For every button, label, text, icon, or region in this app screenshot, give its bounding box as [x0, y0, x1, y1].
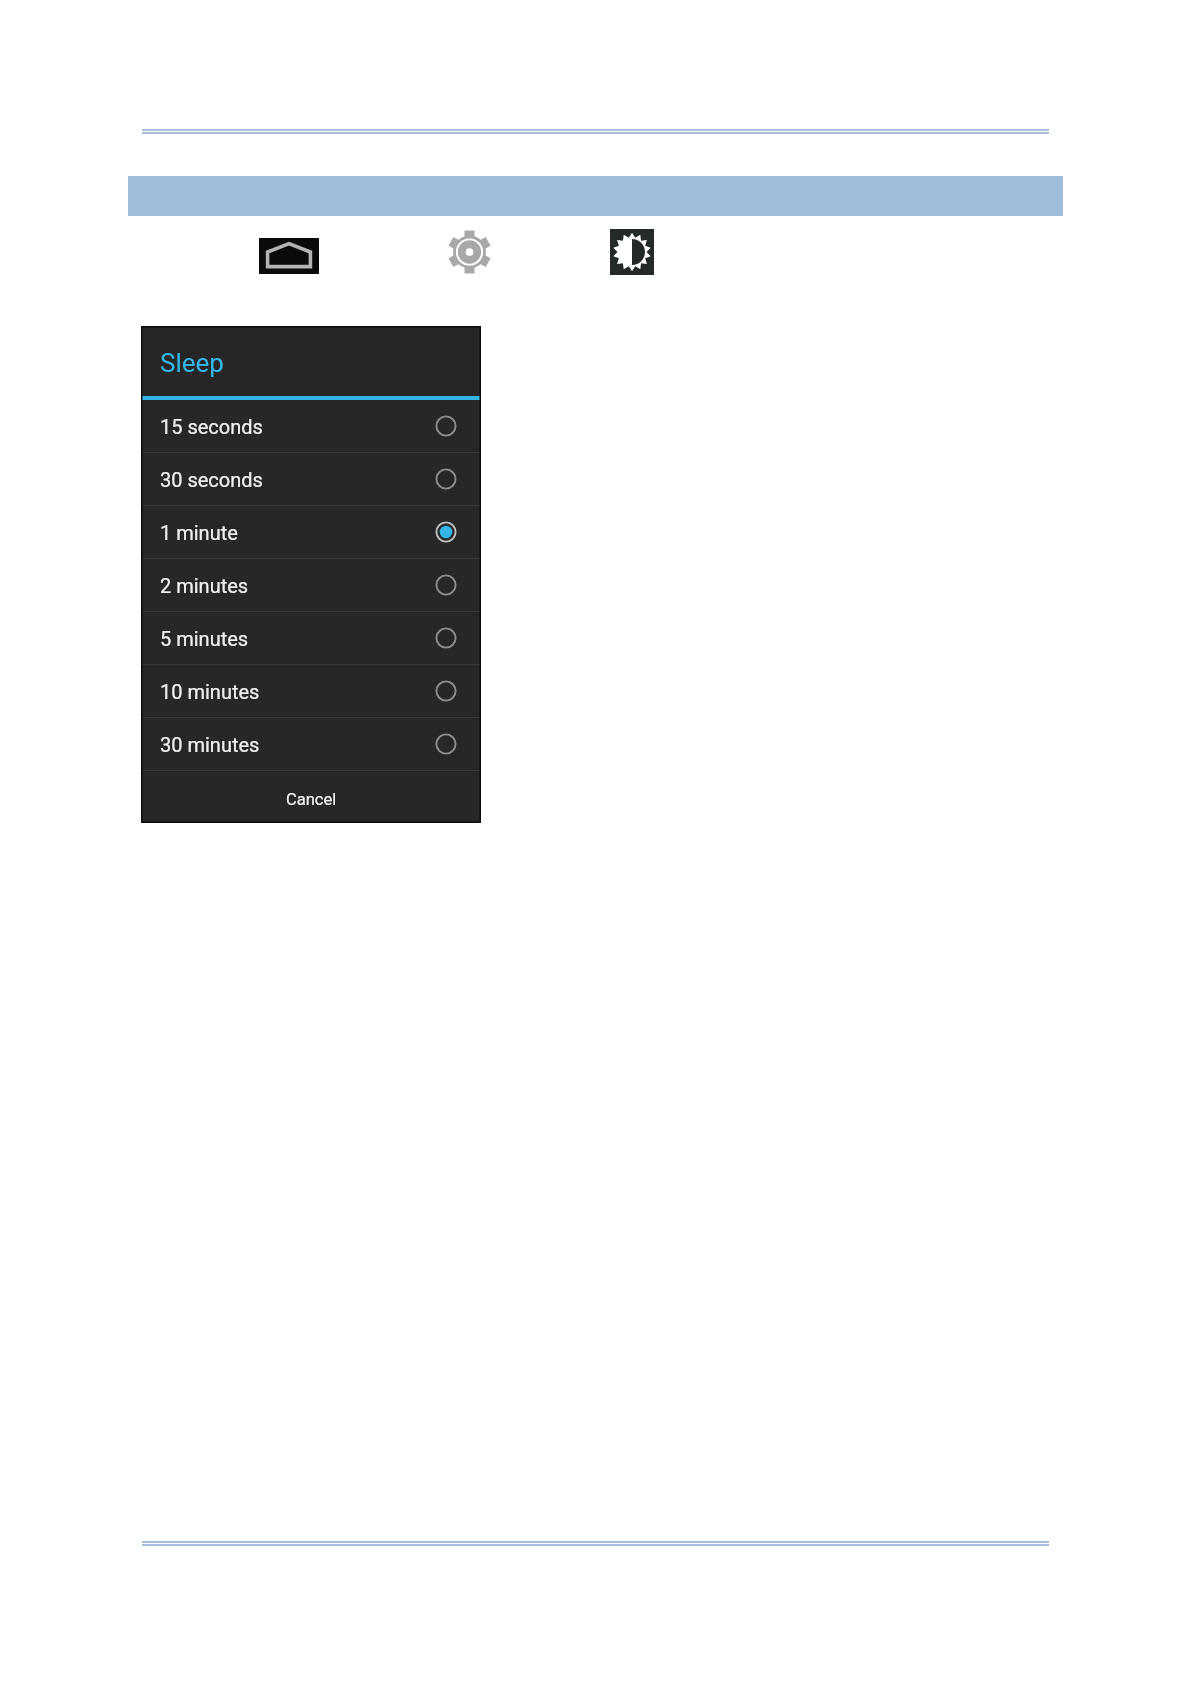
- button[interactable]: 2 minutes: [141, 559, 481, 611]
- staticText: Cancel: [286, 790, 337, 809]
- button[interactable]: 5 minutes: [141, 612, 481, 664]
- button[interactable]: Home: [259, 238, 319, 274]
- staticText: 10 minutes: [160, 680, 260, 703]
- staticText: 5 minutes: [160, 627, 249, 650]
- button[interactable]: 10 minutes: [141, 665, 481, 717]
- button[interactable]: 30 minutes: [141, 718, 481, 770]
- staticText: 30 seconds: [160, 468, 263, 491]
- staticText: 30 minutes: [160, 733, 260, 756]
- button[interactable]: 15 seconds: [141, 400, 481, 452]
- button[interactable]: 30 seconds: [141, 453, 481, 505]
- staticText: 15 seconds: [160, 415, 263, 438]
- staticText: 2 minutes: [160, 574, 249, 597]
- button[interactable]: 1 minute: [141, 506, 481, 558]
- staticText: 1 minute: [160, 521, 238, 544]
- button[interactable]: Brightness: [610, 229, 654, 275]
- button[interactable]: Cancel: [141, 771, 481, 821]
- button[interactable]: Settings: [449, 230, 490, 274]
- staticText: Sleep: [160, 348, 224, 378]
